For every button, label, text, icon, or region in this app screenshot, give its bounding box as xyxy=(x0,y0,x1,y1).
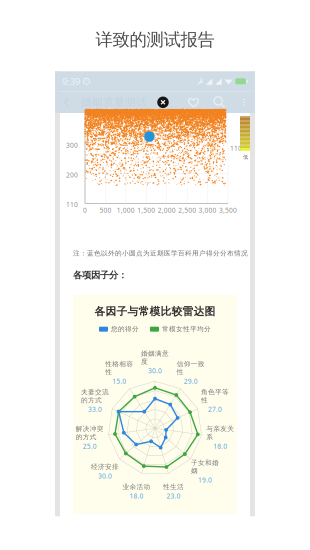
staticText: 1,500 xyxy=(137,206,155,215)
staticText: 常模女性平均分 xyxy=(162,325,211,333)
staticText: 婚姻满意 度 xyxy=(141,349,169,366)
staticText: 业余活动 xyxy=(122,483,150,491)
staticText: 19.0 xyxy=(198,475,212,484)
staticText: 各因子与常模比较雷达图 xyxy=(94,305,215,318)
staticText: 2,000 xyxy=(158,206,176,215)
staticText: 2,500 xyxy=(178,206,196,215)
staticText: 30.0 xyxy=(98,471,112,480)
staticText: 低 xyxy=(243,154,248,160)
staticText: 27.0 xyxy=(208,405,222,414)
staticText: 角色平等 性 xyxy=(201,388,229,404)
staticText: 15.0 xyxy=(112,377,126,386)
staticText: 性生活 xyxy=(163,483,184,491)
staticText: 性格相容 性 xyxy=(105,360,133,376)
staticText: 30.0 xyxy=(148,366,162,375)
staticText: 3,000 xyxy=(199,206,217,215)
staticText: 3,500 xyxy=(219,206,237,215)
staticText: 23.0 xyxy=(167,491,181,500)
staticText: 与亲友关 系 xyxy=(206,425,234,441)
staticText: 1,000 xyxy=(117,206,135,215)
staticText: 110 xyxy=(66,200,78,209)
staticText: 18.0 xyxy=(213,442,227,450)
staticText: 注：蓝色以外的小圆点为近期医学百科用户得分分布情况 xyxy=(73,249,248,257)
staticText: 200 xyxy=(66,170,78,179)
staticText: 18.0 xyxy=(129,491,143,500)
button[interactable]: Favourite xyxy=(186,95,201,109)
staticText: 详致的测试报告 xyxy=(95,29,214,50)
staticText: 经济安排 xyxy=(91,463,119,471)
staticText: 9:39 xyxy=(62,75,80,87)
staticText: 夫妻交流 的方式 xyxy=(81,388,109,404)
staticText: 29.0 xyxy=(184,377,198,386)
staticText: 25.0 xyxy=(83,442,97,450)
button[interactable]: Search xyxy=(212,95,227,110)
staticText: 解决冲突 的方式 xyxy=(76,425,104,441)
staticText: 您的得分 xyxy=(111,325,139,333)
staticText: 0 xyxy=(83,206,87,215)
staticText: 500 xyxy=(99,206,111,215)
staticText: 300 xyxy=(66,141,78,150)
staticText: 信仰一致 性 xyxy=(177,360,205,376)
button[interactable]: More xyxy=(238,95,250,110)
staticText: 婚姻质量测试 xyxy=(81,96,147,109)
staticText: 各项因子分： xyxy=(73,269,127,281)
staticText: 子女和婚 姻 xyxy=(191,459,219,475)
staticText: 110 xyxy=(230,144,242,153)
button[interactable]: Close xyxy=(155,94,171,110)
staticText: 33.0 xyxy=(88,405,102,414)
